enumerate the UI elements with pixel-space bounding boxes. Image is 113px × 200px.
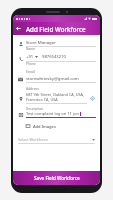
button[interactable]: Store Manager [17,39,96,54]
button[interactable]: Email [17,69,96,86]
staticText: Test complaint log on 11 jun [26,111,79,116]
staticText: Add Images [33,124,56,129]
staticText: +91 [26,54,34,60]
button[interactable]: Add Images [22,121,60,131]
staticText: Description [26,107,44,111]
button[interactable]: Use current location [89,95,96,102]
staticText: 687 9th Street, Oakland CA, USA, San [26,92,87,97]
staticText: Add Field Workforce [26,25,86,33]
staticText: Select Workforce [18,137,48,142]
staticText: Save Field Workforce [34,175,80,181]
button[interactable]: Save Field Workforce [13,171,100,185]
button[interactable]: Address [17,86,96,107]
staticText: Francisco CA, USA [26,97,58,102]
staticText: storewhitesky@gmail.com [26,75,79,81]
button[interactable]: Back [13,23,24,34]
staticText: Phone [26,62,36,66]
staticText: Address [26,86,39,91]
button[interactable]: +91 [17,54,96,69]
staticText: Name [26,47,35,51]
staticText: 9876543210 [42,54,66,60]
staticText: Email [26,69,35,74]
staticText: Store Manager [26,39,56,45]
button[interactable]: Description [17,107,96,118]
button[interactable]: Select Workforce [18,137,95,144]
